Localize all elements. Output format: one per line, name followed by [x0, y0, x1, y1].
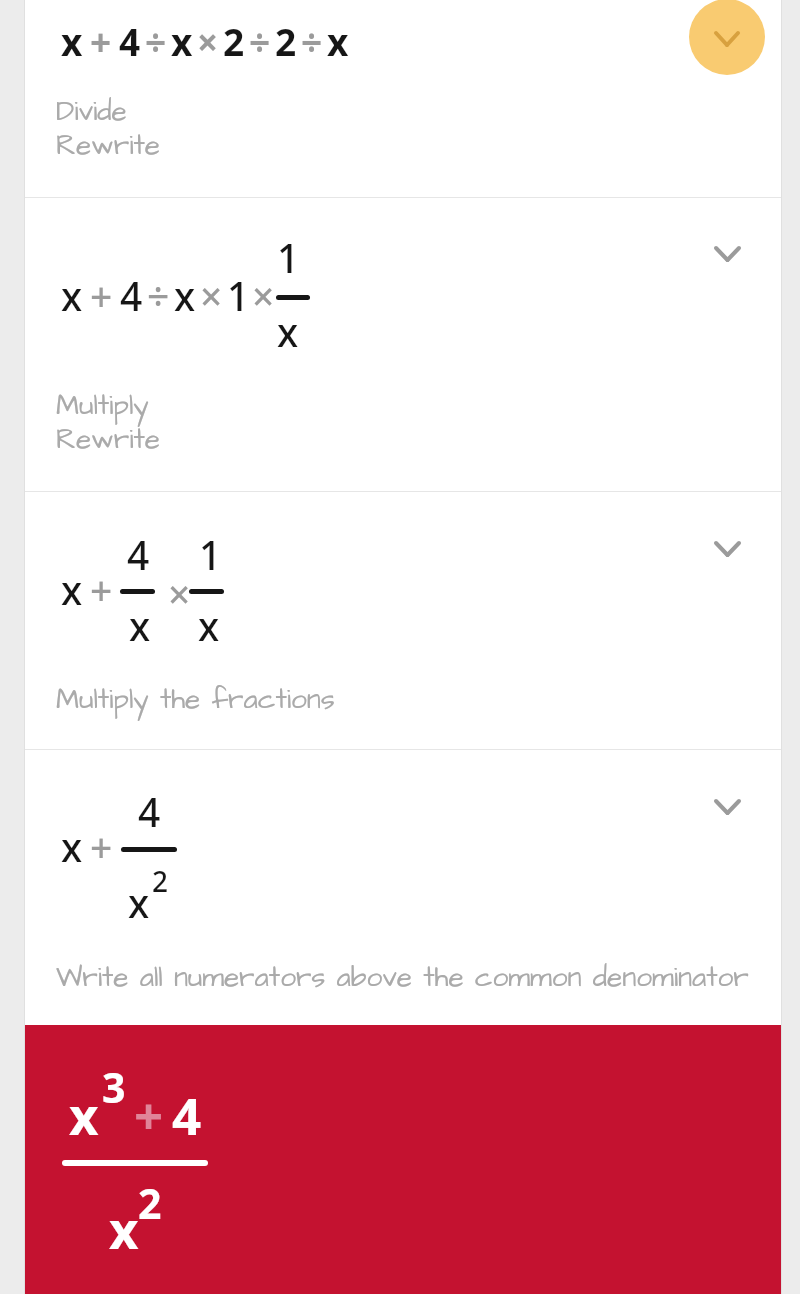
staticText: 4	[127, 528, 150, 581]
button[interactable]: Expand step 2	[714, 246, 741, 262]
staticText: 2	[223, 16, 245, 66]
staticText: x	[109, 1194, 139, 1263]
button[interactable]: x	[25, 492, 781, 749]
button[interactable]: x	[25, 0, 781, 197]
staticText: x	[198, 599, 220, 652]
staticText: x	[277, 305, 299, 358]
staticText: x	[128, 876, 150, 929]
staticText: ×	[200, 269, 223, 322]
staticText: Multiply the fractions	[56, 680, 335, 719]
staticText: 4	[119, 16, 141, 66]
staticText: 2	[138, 1175, 162, 1231]
staticText: 4	[172, 1080, 202, 1149]
staticText: Divide	[56, 92, 127, 131]
button[interactable]: Expand step 4	[714, 799, 741, 815]
staticText: +	[90, 820, 113, 873]
button[interactable]: Expand step 3	[714, 541, 741, 557]
staticText: ÷	[249, 16, 271, 66]
staticText: ×	[197, 16, 219, 66]
staticText: 2	[152, 862, 169, 900]
staticText: +	[90, 563, 113, 616]
staticText: x	[61, 563, 83, 616]
staticText: x	[129, 599, 151, 652]
staticText: 2	[275, 16, 297, 66]
staticText: ÷	[147, 269, 170, 322]
staticText: x	[174, 269, 196, 322]
staticText: 1	[277, 231, 300, 284]
staticText: 1	[227, 269, 250, 322]
staticText: 4	[138, 785, 161, 838]
staticText: ×	[252, 269, 275, 322]
staticText: Rewrite	[56, 420, 160, 459]
staticText: Rewrite	[56, 126, 160, 165]
staticText: x	[69, 1080, 99, 1149]
button[interactable]: Collapse step 1	[689, 0, 765, 76]
staticText: 4	[120, 269, 143, 322]
staticText: 1	[199, 528, 222, 581]
button[interactable]: x	[25, 198, 781, 491]
staticText: x	[171, 16, 193, 66]
staticText: Multiply	[56, 386, 149, 425]
staticText: +	[90, 269, 113, 322]
staticText: ÷	[301, 16, 323, 66]
staticText: x	[61, 269, 83, 322]
staticText: x	[61, 820, 83, 873]
staticText: ÷	[145, 16, 167, 66]
staticText: x	[327, 16, 349, 66]
staticText: ×	[168, 567, 191, 620]
staticText: +	[90, 16, 112, 66]
button[interactable]: x	[25, 1025, 781, 1294]
button[interactable]: x	[25, 750, 781, 1025]
staticText: 3	[102, 1059, 126, 1115]
staticText: x	[61, 16, 83, 66]
staticText: +	[134, 1080, 164, 1149]
staticText: Write all numerators above the common de…	[56, 958, 749, 997]
